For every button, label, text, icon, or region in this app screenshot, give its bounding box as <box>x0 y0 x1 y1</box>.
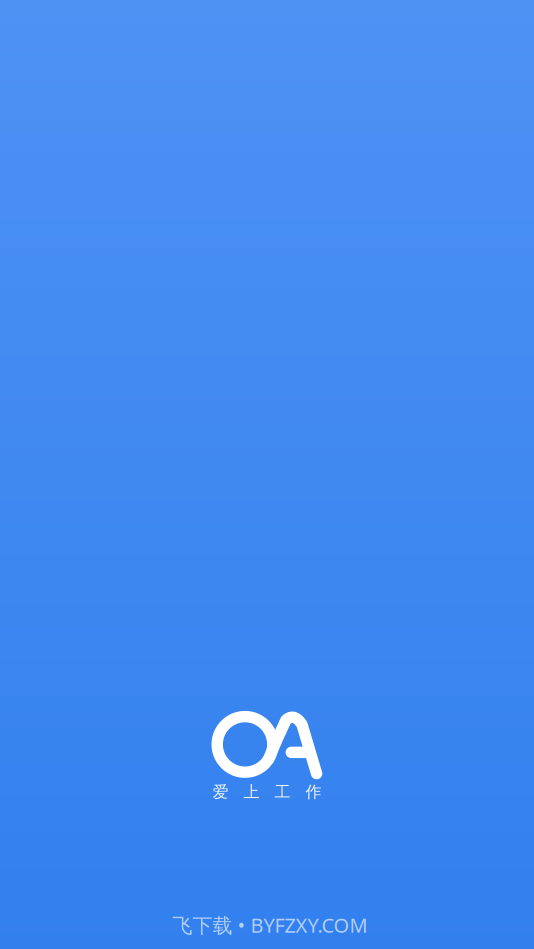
staticText: 爱 上 工 作 <box>212 782 321 802</box>
staticText: 飞下载 • BYFZXY.COM <box>172 912 367 938</box>
